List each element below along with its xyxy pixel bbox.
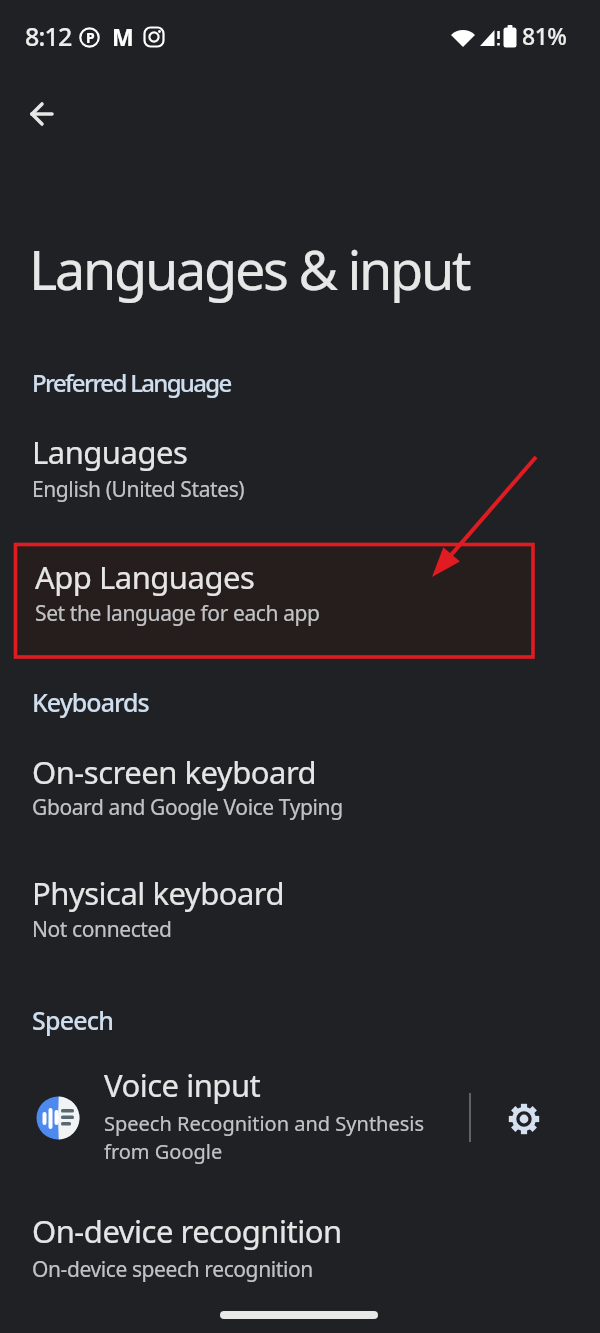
button[interactable]: App Languages <box>15 544 534 657</box>
button[interactable]: On-screen keyboard <box>0 745 600 840</box>
staticText: Speech <box>32 1003 114 1037</box>
button[interactable]: Languages <box>0 425 600 520</box>
button[interactable] <box>0 1060 462 1180</box>
button[interactable]: Physical keyboard <box>0 866 600 961</box>
staticText: English (United States) <box>32 475 245 504</box>
staticText: 8:12 <box>25 19 72 53</box>
staticText: Languages & input <box>29 232 470 306</box>
staticText: Preferred Language <box>32 366 231 399</box>
staticText: On-device speech recognition <box>32 1255 313 1284</box>
staticText: P <box>86 28 95 47</box>
staticText: Set the language for each app <box>35 599 320 628</box>
button[interactable] <box>500 1095 548 1143</box>
staticText: M <box>112 21 134 52</box>
staticText: Keyboards <box>32 685 149 719</box>
staticText: Not connected <box>32 915 172 944</box>
staticText: On-screen keyboard <box>32 751 317 793</box>
button[interactable]: On-device recognition <box>0 1205 600 1300</box>
staticText: Speech Recognition and Synthesis from Go… <box>104 1110 425 1165</box>
staticText: Physical keyboard <box>32 872 285 914</box>
staticText: App Languages <box>35 556 255 598</box>
button[interactable] <box>20 92 64 136</box>
staticText: Gboard and Google Voice Typing <box>32 793 343 822</box>
button[interactable] <box>220 1311 378 1319</box>
staticText: Languages <box>32 431 188 473</box>
staticText: 81% <box>522 20 567 51</box>
staticText: On-device recognition <box>32 1210 342 1252</box>
staticText: Voice input <box>104 1064 261 1106</box>
